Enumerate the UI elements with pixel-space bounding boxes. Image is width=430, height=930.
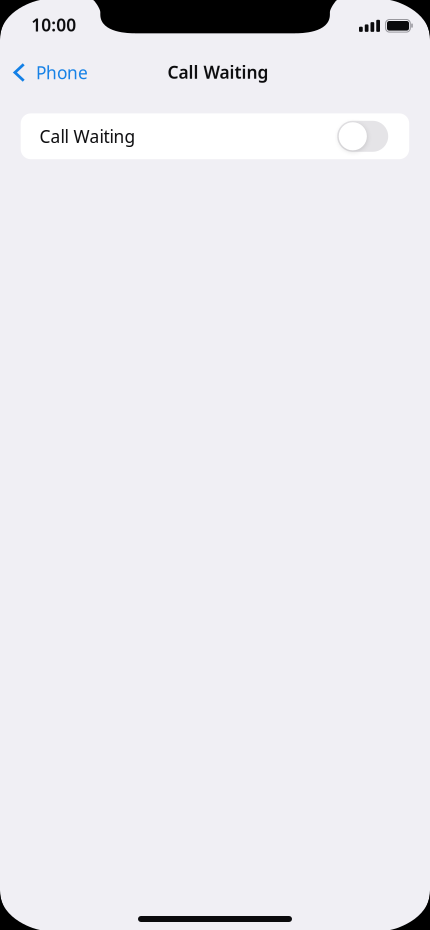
staticText: 10:00 — [31, 13, 76, 36]
staticText: Phone — [36, 61, 88, 84]
button[interactable]: Phone — [0, 50, 98, 94]
staticText: Call Waiting — [167, 60, 268, 83]
staticText: Call Waiting — [39, 125, 135, 148]
button[interactable]: Call Waiting — [337, 121, 388, 152]
button[interactable]: Call Waiting — [21, 113, 409, 159]
